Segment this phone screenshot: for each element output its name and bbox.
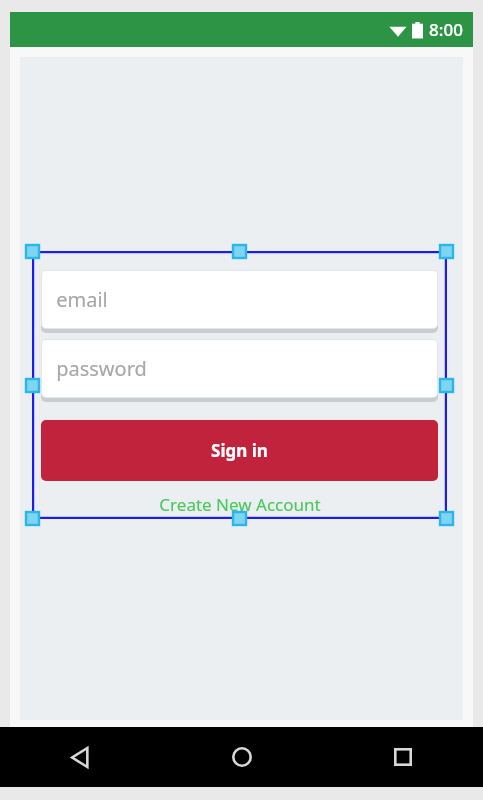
- staticText: Sign in: [211, 439, 268, 462]
- button[interactable]: Create New Account: [32, 489, 447, 519]
- button[interactable]: Back: [0, 727, 161, 787]
- button[interactable]: password: [41, 339, 438, 402]
- button[interactable]: Recent apps: [322, 727, 483, 787]
- button[interactable]: Home: [161, 727, 322, 787]
- staticText: email: [56, 286, 108, 313]
- staticText: password: [56, 355, 147, 382]
- button[interactable]: Sign in: [41, 420, 438, 481]
- staticText: Create New Account: [159, 493, 321, 516]
- staticText: 8:00: [429, 18, 463, 41]
- button[interactable]: email: [41, 270, 438, 333]
